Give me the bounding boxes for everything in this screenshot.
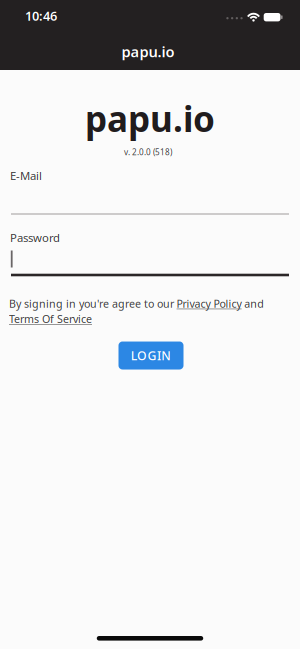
button[interactable]: E-Mail [0,166,300,218]
staticText: Password [10,230,60,245]
staticText: 10:46 [25,7,57,24]
button[interactable]: Privacy Policy [177,296,242,311]
staticText: papu.io [121,41,174,61]
button[interactable]: LOGIN [118,341,183,369]
staticText: papu.io [85,95,215,142]
staticText: LOGIN [131,347,171,364]
button[interactable]: Password [0,228,300,284]
staticText: E-Mail [10,168,42,183]
button[interactable]: Terms Of Service [9,312,92,326]
staticText: and [244,296,264,311]
staticText: By signing in you're agree to our [9,296,174,311]
staticText: v. 2.0.0 (518) [124,147,172,158]
staticText: Terms Of Service [9,312,92,326]
staticText: Privacy Policy [177,296,242,311]
